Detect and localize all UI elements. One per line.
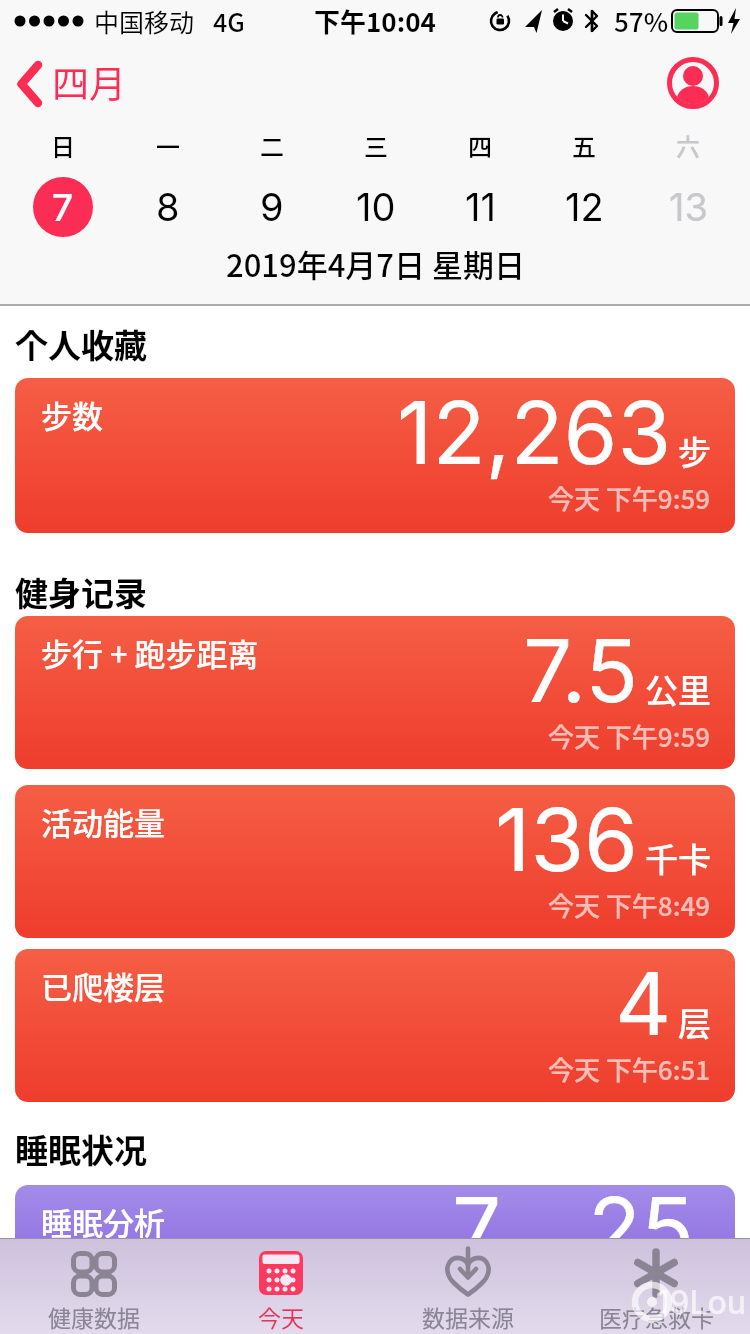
staticText: 下午10:04: [314, 2, 436, 40]
staticText: 活动能量: [41, 799, 165, 844]
staticText: 四月: [52, 55, 126, 109]
staticText: 步: [678, 427, 711, 475]
staticText: 7: [452, 1185, 502, 1281]
staticText: 9: [260, 184, 284, 230]
staticText: 四: [468, 128, 492, 160]
button[interactable]: 9: [220, 176, 324, 238]
staticText: 7.5: [523, 618, 639, 723]
staticText: 睡眠状况: [15, 1125, 147, 1173]
staticText: 今天 下午6:51: [548, 1050, 711, 1088]
staticText: 12,263: [397, 380, 672, 485]
staticText: 12: [565, 184, 604, 230]
staticText: 日: [51, 128, 75, 160]
staticText: 一: [156, 128, 180, 160]
button[interactable]: 13: [636, 176, 740, 238]
button[interactable]: 步数: [15, 378, 735, 533]
staticText: 今天 下午9:59: [548, 717, 711, 755]
staticText: 13: [669, 184, 708, 230]
staticText: 11: [465, 184, 496, 230]
staticText: 健康数据: [48, 1300, 140, 1332]
staticText: 健身记录: [15, 568, 147, 616]
staticText: 4: [615, 951, 672, 1056]
staticText: 25: [588, 1185, 694, 1281]
button[interactable]: 已爬楼层: [15, 949, 735, 1102]
staticText: 睡眠分析: [41, 1199, 165, 1244]
staticText: 公里: [645, 665, 711, 713]
staticText: 二: [260, 128, 284, 160]
button[interactable]: 四月: [8, 52, 168, 112]
button[interactable]: [666, 56, 720, 110]
button[interactable]: 7: [10, 176, 115, 238]
button[interactable]: 活动能量: [15, 785, 735, 938]
staticText: 已爬楼层: [41, 963, 165, 1008]
staticText: 今天 下午9:59: [548, 479, 711, 517]
staticText: 136: [495, 787, 639, 892]
staticText: 数据来源: [422, 1300, 514, 1332]
staticText: 中国移动: [94, 3, 195, 39]
staticText: 今天 下午8:49: [548, 886, 711, 924]
staticText: 今天: [258, 1300, 304, 1332]
staticText: 2019年4月7日 星期日: [226, 241, 525, 286]
button[interactable]: 10: [324, 176, 428, 238]
button[interactable]: 8: [115, 176, 220, 238]
button[interactable]: 睡眠分析: [15, 1185, 735, 1334]
staticText: 步数: [41, 392, 103, 437]
button[interactable]: 医疗急救卡: [562, 1238, 750, 1334]
button[interactable]: 步行 + 跑步距离: [15, 616, 735, 769]
staticText: 57%: [614, 2, 669, 40]
staticText: 8: [156, 184, 180, 230]
staticText: 4G: [213, 3, 245, 39]
button[interactable]: 数据来源: [374, 1238, 562, 1334]
button[interactable]: 今天: [187, 1238, 374, 1334]
button[interactable]: 健康数据: [0, 1238, 187, 1334]
staticText: 五: [572, 128, 596, 160]
staticText: 层: [678, 998, 711, 1046]
staticText: 医疗急救卡: [599, 1300, 714, 1332]
staticText: 19Lou: [656, 1283, 747, 1322]
staticText: 10: [356, 184, 396, 230]
staticText: 六: [676, 128, 700, 160]
button[interactable]: 11: [428, 176, 532, 238]
staticText: 千卡: [645, 834, 711, 882]
staticText: 个人收藏: [15, 320, 147, 368]
staticText: 步行 + 跑步距离: [41, 630, 259, 675]
button[interactable]: 12: [532, 176, 636, 238]
staticText: 7: [52, 185, 74, 230]
staticText: 三: [364, 128, 388, 160]
